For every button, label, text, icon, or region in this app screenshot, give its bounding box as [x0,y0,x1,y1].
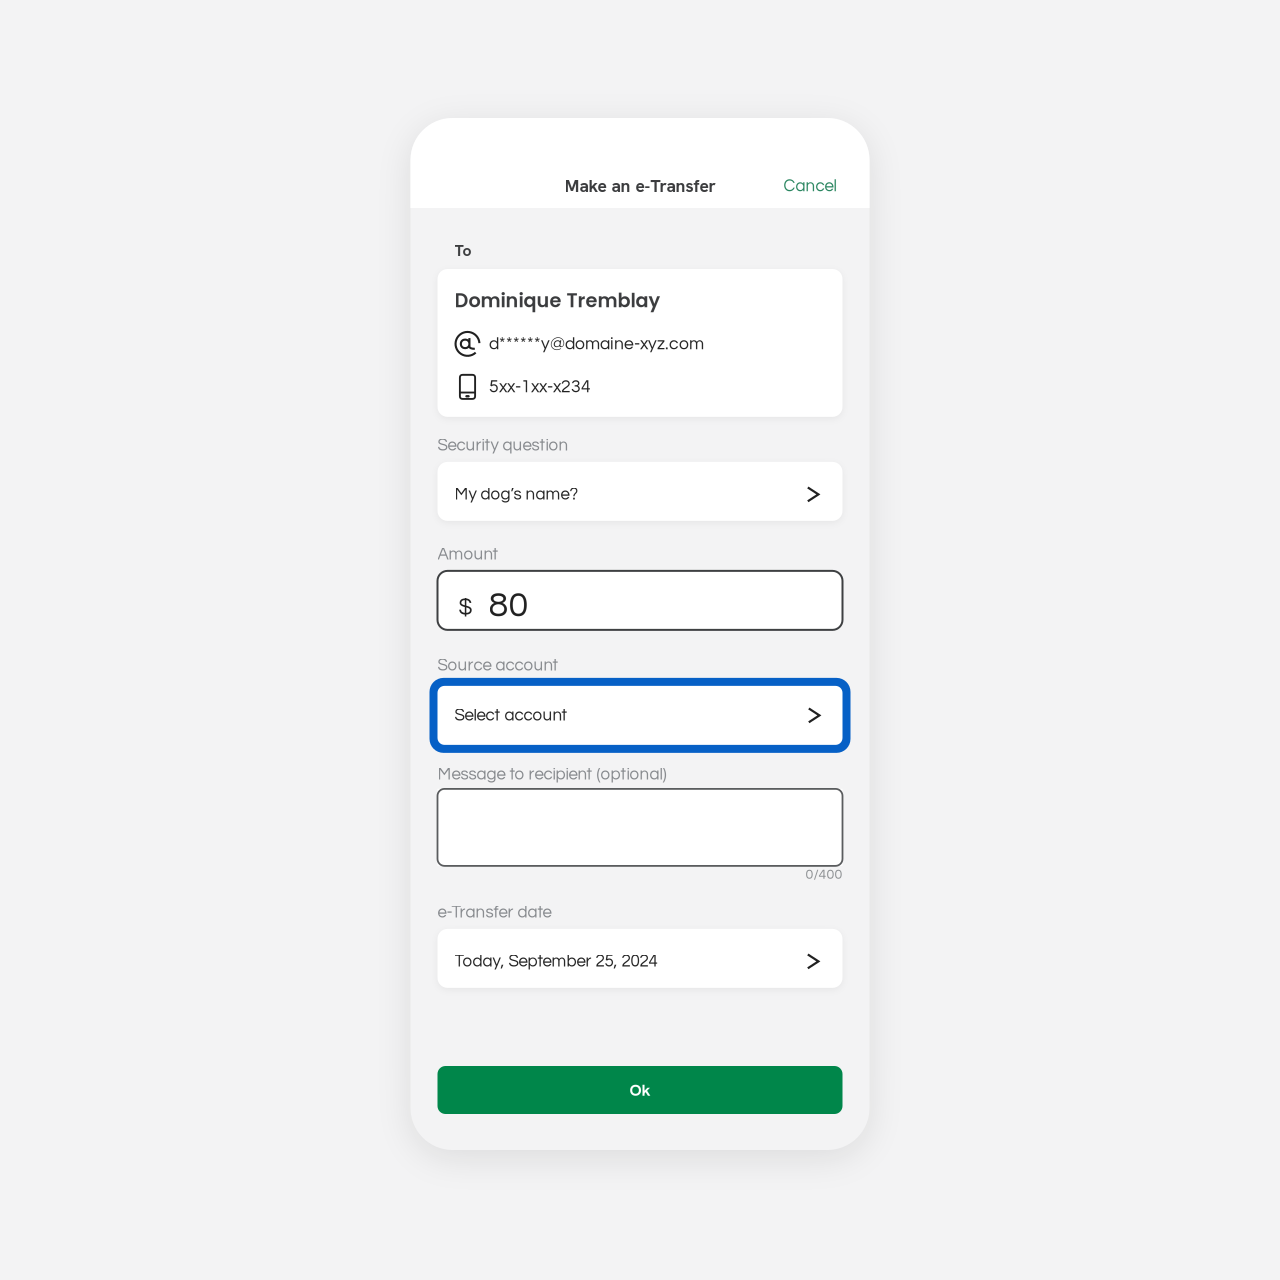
staticText: $ [458,596,472,619]
staticText: Security question [437,437,568,454]
staticText: 5xx-1xx-x234 [489,378,591,396]
staticText: Ok [629,1079,650,1101]
staticText: To [454,240,471,261]
staticText: 80 [488,587,528,624]
staticText: Select account [454,707,567,724]
staticText: Make an e-Transfer [564,175,715,197]
button[interactable]: Select account [429,678,850,753]
staticText: e-Transfer date [437,904,551,921]
staticText: Cancel [783,177,836,195]
button[interactable]: My dog’s name? [437,462,842,521]
button[interactable]: Cancel [773,170,846,202]
staticText: Amount [437,546,498,563]
button[interactable]: Today, September 25, 2024 [437,929,842,988]
staticText: d******y@domaine-xyz.com [489,335,704,353]
staticText: My dog’s name? [454,486,578,503]
staticText: Today, September 25, 2024 [454,953,657,970]
button[interactable]: Ok [437,1066,842,1114]
staticText: 0/400 [805,867,842,882]
staticText: Message to recipient (optional) [437,766,666,783]
staticText: Dominique Tremblay [454,287,660,314]
staticText: Source account [437,657,558,674]
